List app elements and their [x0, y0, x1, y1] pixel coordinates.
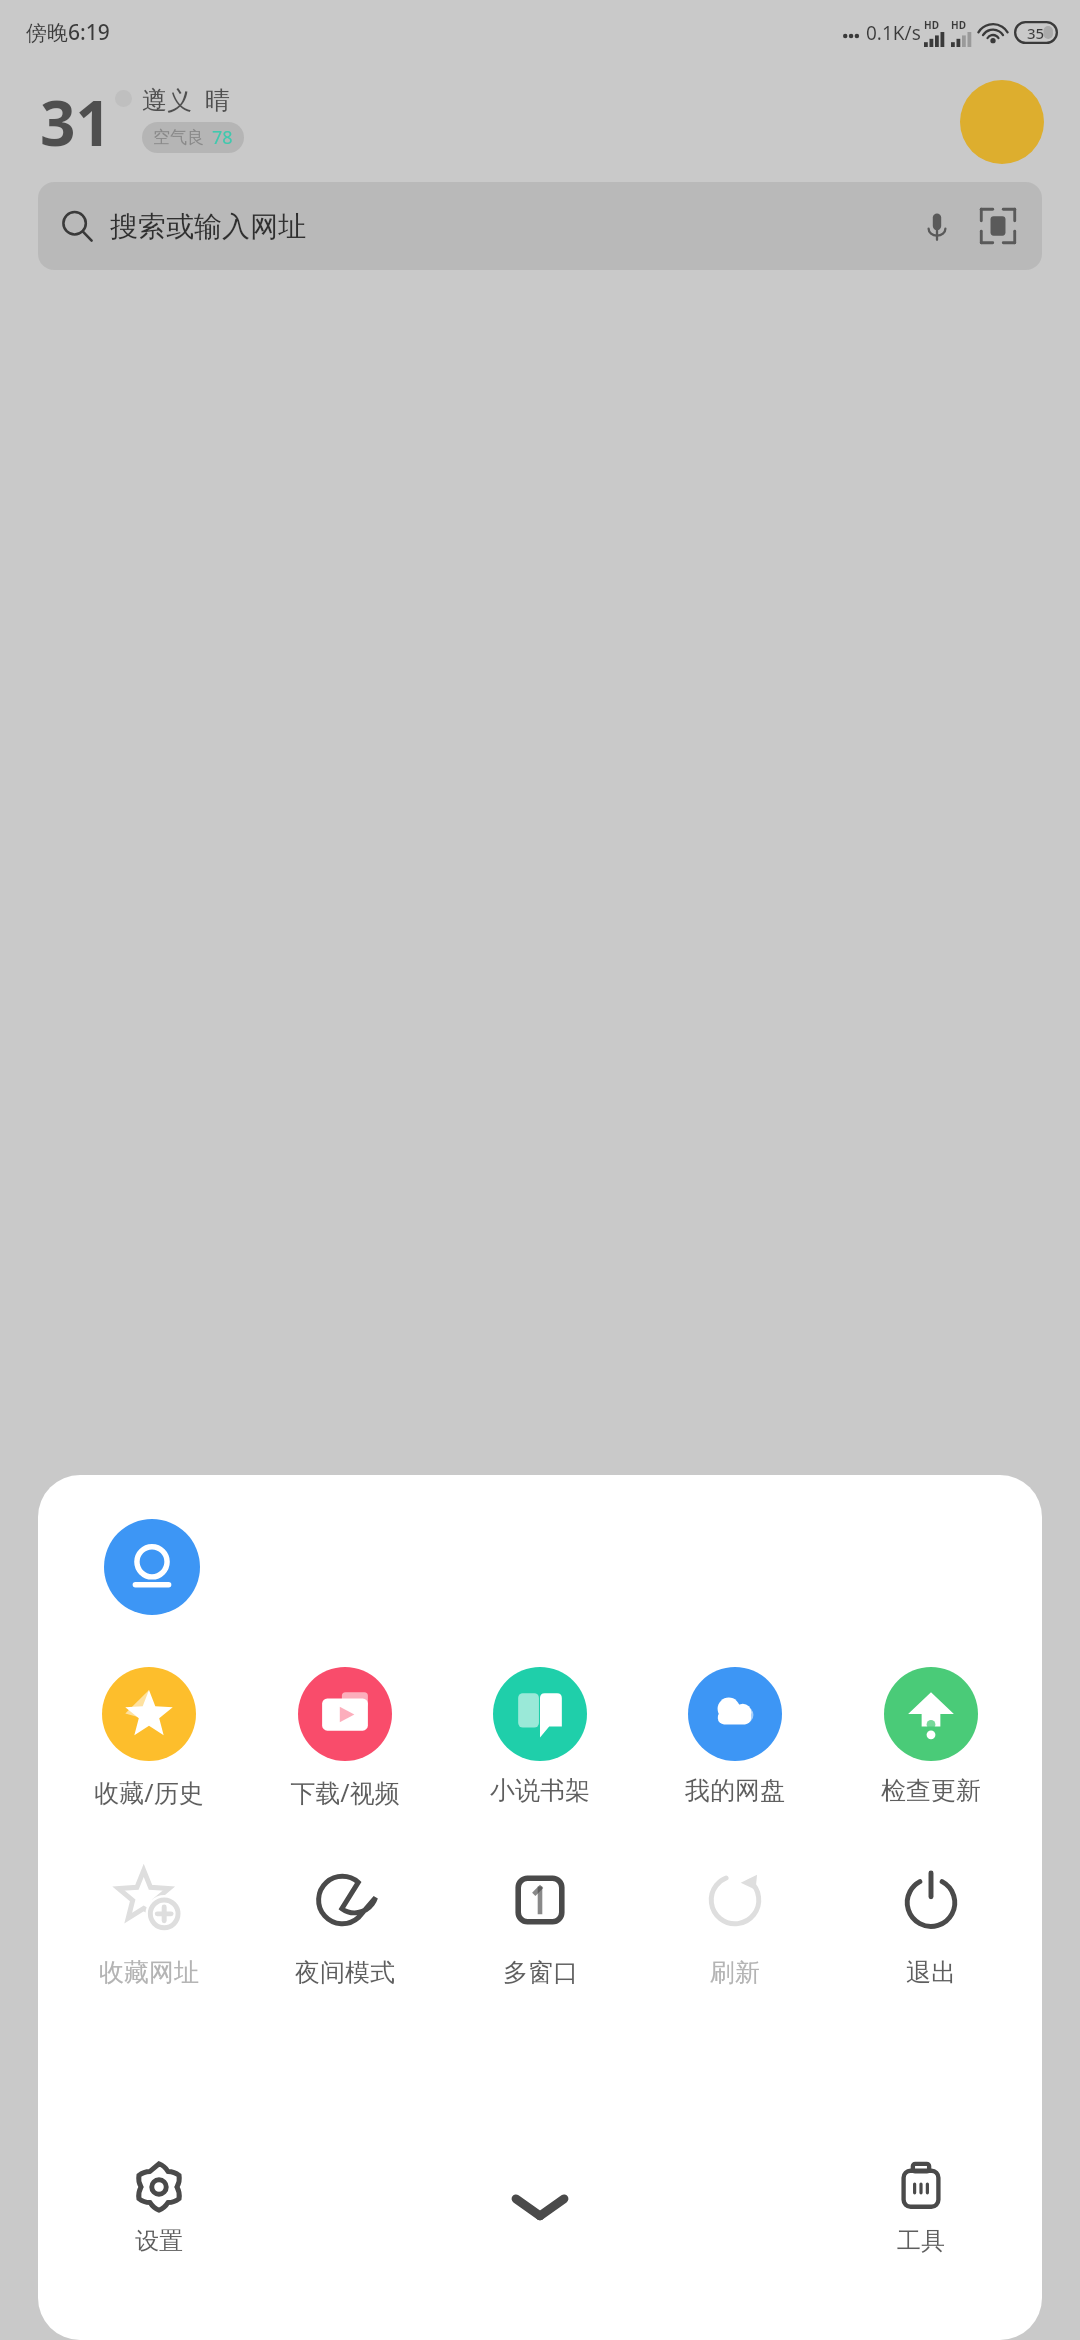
staticText: 35 [1027, 23, 1045, 43]
staticText: 0.1K/s [866, 20, 921, 46]
button[interactable]: 多窗口 [456, 1851, 624, 1990]
staticText: 搜索或输入网址 [110, 209, 306, 244]
staticText: 小说书架 [490, 1775, 590, 1806]
staticText: 傍晚6:19 [26, 18, 110, 47]
staticText: 设置 [135, 2226, 183, 2256]
staticText: 工具 [897, 2226, 945, 2256]
button[interactable]: 设置 [124, 2152, 194, 2262]
staticText: HD [951, 18, 966, 32]
staticText: 我的网盘 [685, 1775, 785, 1806]
button[interactable]: 搜索或输入网址 [38, 182, 1042, 270]
staticText: 收藏网址 [99, 1957, 199, 1988]
staticText: 多窗口 [503, 1957, 578, 1988]
button[interactable]: 退出 [847, 1851, 1015, 1990]
staticText: 退出 [906, 1957, 956, 1988]
staticText: 夜间模式 [295, 1957, 395, 1988]
button[interactable]: Voice search [916, 205, 958, 247]
staticText: 遵义 晴 [142, 82, 231, 116]
button[interactable]: 收藏网址 [65, 1851, 233, 1990]
button[interactable]: 检查更新 [847, 1665, 1015, 1808]
staticText: 下载/视频 [290, 1775, 400, 1809]
button[interactable]: Account [104, 1519, 200, 1615]
staticText: 31 [40, 80, 111, 164]
button[interactable]: Scan code [976, 204, 1020, 248]
button[interactable]: 刷新 [651, 1851, 819, 1990]
staticText: 收藏/历史 [94, 1775, 204, 1809]
button[interactable]: 下载/视频 [261, 1665, 429, 1811]
button[interactable]: 31 [40, 80, 252, 164]
button[interactable]: 我的网盘 [651, 1665, 819, 1808]
button[interactable]: Profile [960, 80, 1044, 164]
button[interactable]: 收藏/历史 [65, 1665, 233, 1811]
button[interactable]: 夜间模式 [261, 1851, 429, 1990]
staticText: 空气良 [153, 127, 204, 148]
staticText: 刷新 [710, 1957, 760, 1988]
button[interactable]: 工具 [886, 2152, 956, 2262]
button[interactable]: 小说书架 [456, 1665, 624, 1808]
button[interactable]: Collapse [492, 2172, 588, 2242]
staticText: HD [924, 18, 939, 32]
staticText: 78 [212, 125, 233, 150]
staticText: 检查更新 [881, 1775, 981, 1806]
